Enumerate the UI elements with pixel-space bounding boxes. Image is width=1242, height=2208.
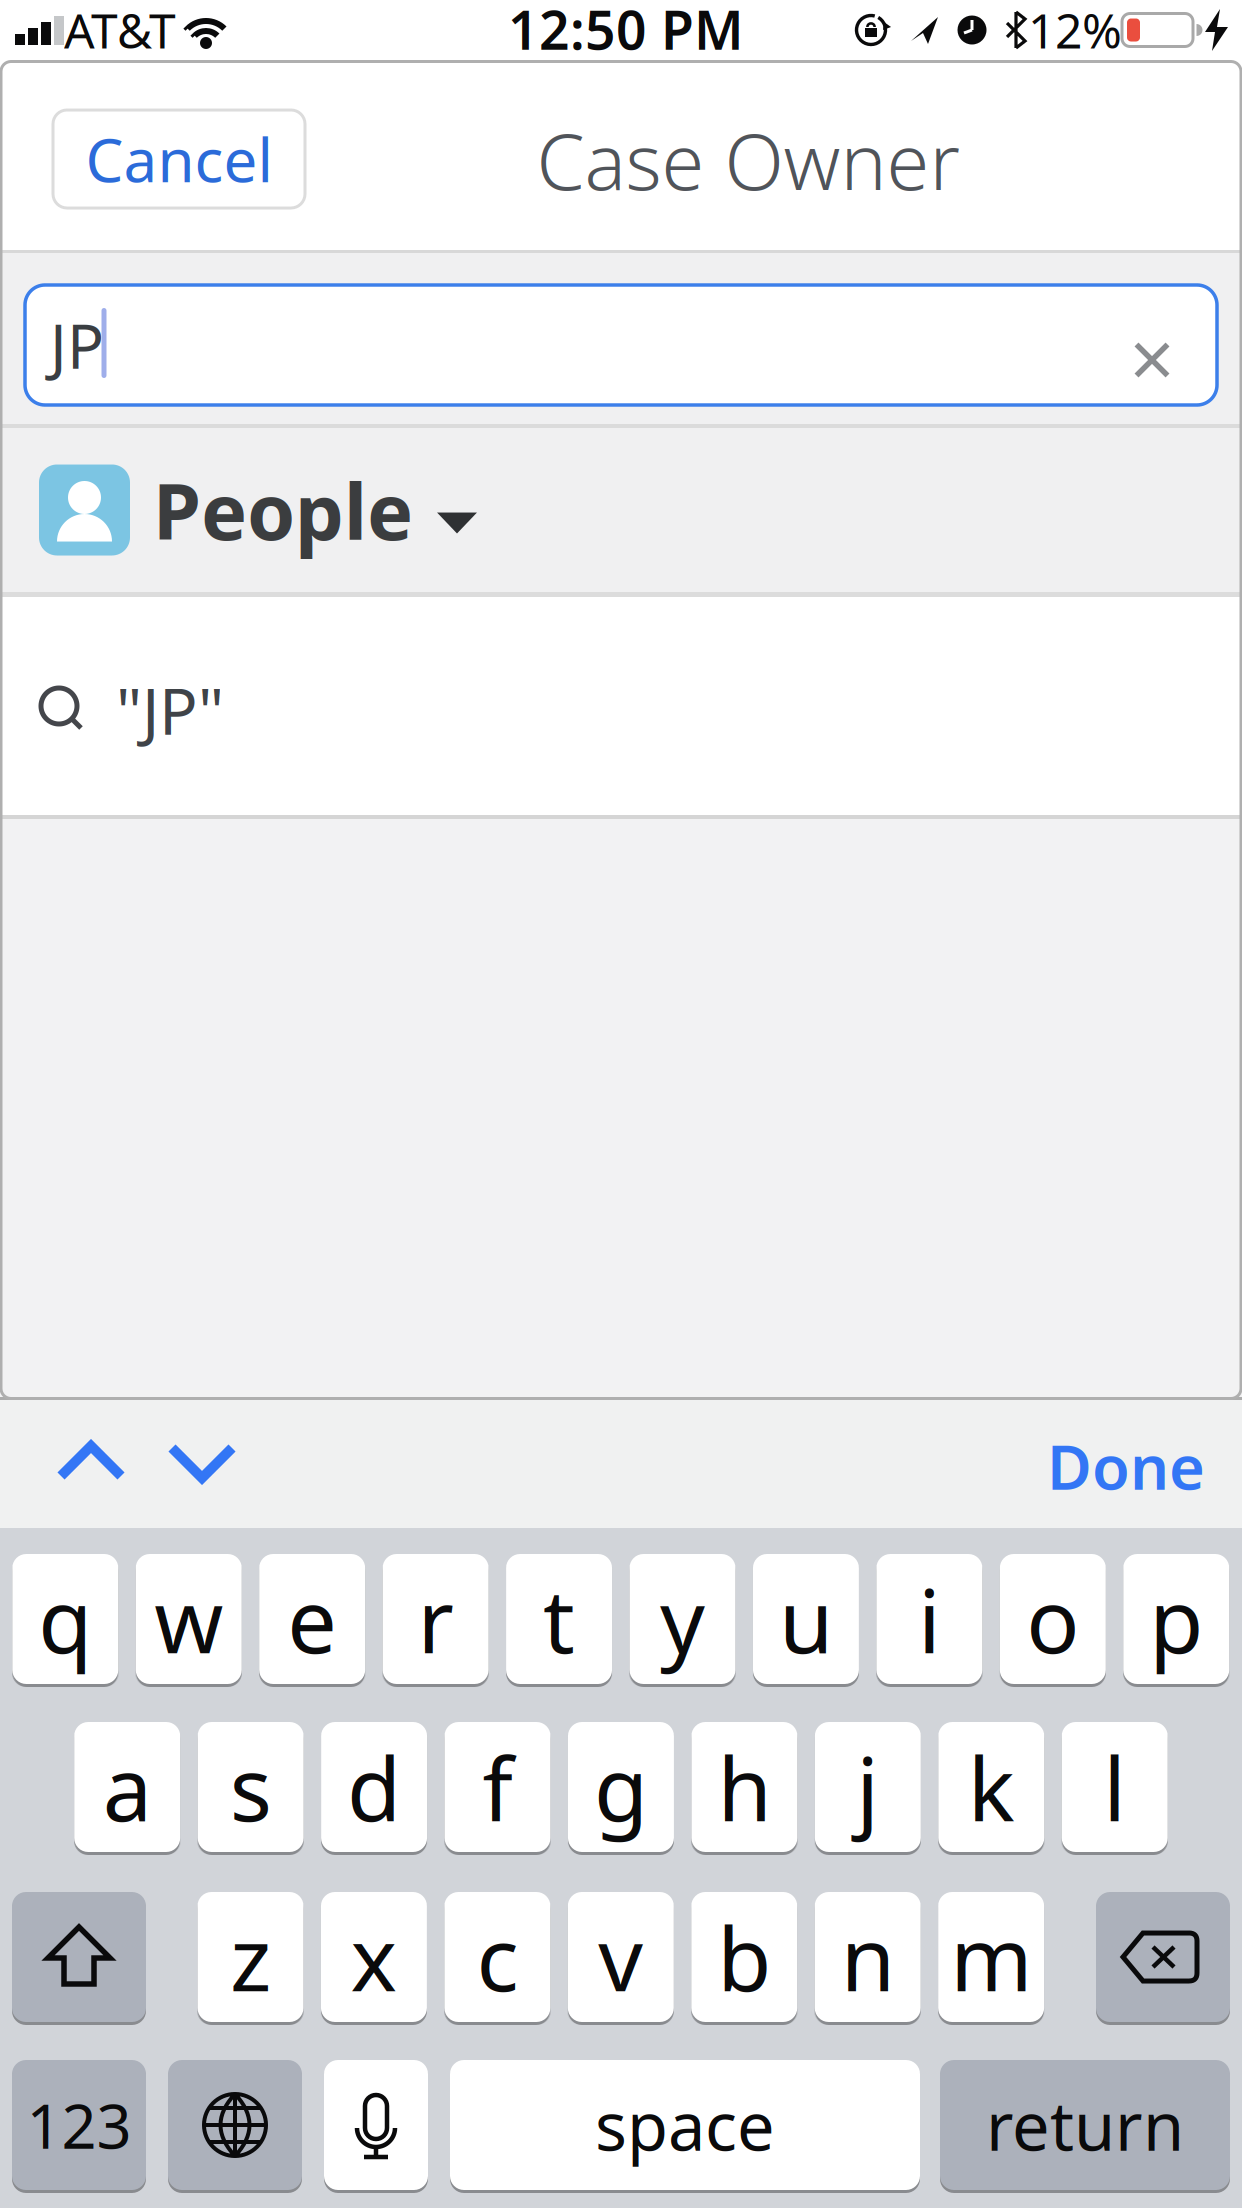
button[interactable]: Numbers xyxy=(12,2060,146,2190)
staticText: r xyxy=(418,1561,454,1677)
button[interactable]: p xyxy=(1123,1554,1229,1684)
staticText: AT&T xyxy=(64,0,176,62)
button[interactable]: y xyxy=(629,1554,735,1684)
staticText: l xyxy=(1103,1729,1126,1845)
button[interactable]: Dictate xyxy=(324,2060,428,2190)
button[interactable]: Cancel xyxy=(53,110,305,208)
staticText: 12:50 PM xyxy=(508,0,744,64)
button[interactable]: Next keyboard xyxy=(168,2060,302,2190)
staticText: m xyxy=(950,1899,1032,2015)
staticText: return xyxy=(986,2081,1184,2169)
staticText: d xyxy=(347,1729,401,1845)
button[interactable]: Delete xyxy=(1096,1892,1230,2022)
staticText: o xyxy=(1026,1561,1079,1677)
staticText: q xyxy=(38,1561,92,1677)
staticText: n xyxy=(841,1899,895,2015)
button[interactable]: f xyxy=(444,1722,550,1852)
staticText: f xyxy=(482,1729,512,1845)
staticText: 12% xyxy=(1028,0,1122,62)
button[interactable]: o xyxy=(1000,1554,1106,1684)
button[interactable]: c xyxy=(444,1892,550,2022)
button[interactable]: Next field xyxy=(152,1412,252,1512)
staticText: h xyxy=(717,1729,771,1845)
staticText: Cancel xyxy=(85,119,272,199)
staticText: space xyxy=(595,2081,775,2169)
button[interactable]: u xyxy=(753,1554,859,1684)
button[interactable]: z xyxy=(197,1892,303,2022)
button[interactable]: k xyxy=(938,1722,1044,1852)
button[interactable]: j xyxy=(815,1722,921,1852)
staticText: z xyxy=(230,1899,271,2015)
staticText: e xyxy=(287,1561,337,1677)
staticText: b xyxy=(717,1899,771,2015)
staticText: i xyxy=(918,1561,941,1677)
button[interactable]: r xyxy=(383,1554,489,1684)
staticText: Case Owner xyxy=(536,109,959,211)
staticText: JP xyxy=(50,304,104,386)
staticText: g xyxy=(594,1729,648,1845)
button[interactable]: Clear text xyxy=(1121,329,1182,390)
staticText: Done xyxy=(1047,1425,1205,1507)
button[interactable]: Done xyxy=(1036,1411,1216,1521)
staticText: p xyxy=(1149,1561,1203,1677)
button[interactable]: h xyxy=(691,1722,797,1852)
button[interactable]: Search xyxy=(25,285,1217,405)
button[interactable]: t xyxy=(506,1554,612,1684)
button[interactable]: space xyxy=(450,2060,920,2190)
staticText: 123 xyxy=(26,2084,131,2166)
button[interactable]: a xyxy=(74,1722,180,1852)
button[interactable]: e xyxy=(259,1554,365,1684)
button[interactable]: return xyxy=(940,2060,1230,2190)
button[interactable]: w xyxy=(136,1554,242,1684)
staticText: a xyxy=(103,1729,152,1845)
staticText: v xyxy=(598,1899,643,2015)
button[interactable]: d xyxy=(321,1722,427,1852)
button[interactable]: n xyxy=(815,1892,921,2022)
button[interactable]: "JP" xyxy=(0,597,1242,815)
button[interactable]: i xyxy=(876,1554,982,1684)
button[interactable]: q xyxy=(12,1554,118,1684)
staticText: "JP" xyxy=(116,667,224,752)
button[interactable]: People xyxy=(0,428,477,592)
button[interactable]: Shift xyxy=(12,1892,146,2022)
staticText: t xyxy=(543,1561,575,1677)
staticText: y xyxy=(660,1561,705,1677)
staticText: c xyxy=(476,1899,518,2015)
staticText: w xyxy=(154,1561,223,1677)
button[interactable]: b xyxy=(691,1892,797,2022)
button[interactable]: Previous field xyxy=(41,1412,141,1512)
staticText: j xyxy=(856,1729,879,1845)
staticText: x xyxy=(350,1899,397,2015)
button[interactable]: s xyxy=(198,1722,304,1852)
button[interactable]: m xyxy=(938,1892,1044,2022)
button[interactable]: x xyxy=(321,1892,427,2022)
staticText: k xyxy=(968,1729,1015,1845)
button[interactable]: v xyxy=(568,1892,674,2022)
button[interactable]: l xyxy=(1062,1722,1168,1852)
staticText: s xyxy=(230,1729,272,1845)
button[interactable]: g xyxy=(568,1722,674,1852)
staticText: u xyxy=(779,1561,833,1677)
staticText: People xyxy=(153,459,413,561)
